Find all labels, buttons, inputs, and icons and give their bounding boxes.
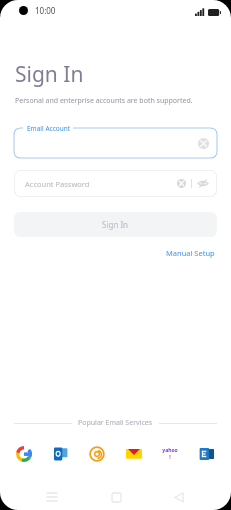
staticText: Personal and enterprise accounts are bot… [15,96,193,106]
button[interactable]: Back [168,486,190,508]
button[interactable]: Google [12,442,36,466]
staticText: Manual Setup [166,248,215,258]
staticText: Popular Email Services [78,418,153,428]
staticText: Account Password [25,179,90,189]
button[interactable]: Mail app [122,442,146,466]
button[interactable]: Show password [197,179,209,188]
staticText: Sign In [102,219,129,230]
button[interactable]: Manual Setup [164,246,217,260]
button[interactable]: Sign In [14,212,217,237]
staticText: yahoo! [162,447,178,461]
button[interactable]: Recent apps [41,486,63,508]
button[interactable]: Clear email [198,138,209,149]
button[interactable]: Home [105,486,127,508]
button[interactable]: Mail [85,442,109,466]
button[interactable]: Clear password [177,179,186,188]
button[interactable]: Outlook [49,442,73,466]
staticText: 10:00 [35,5,56,16]
button[interactable]: Account Password [14,170,217,197]
button[interactable]: Yahoo [158,442,182,466]
button[interactable]: Exchange [195,442,219,466]
staticText: Email Account [27,124,71,133]
staticText: Sign In [15,60,84,89]
